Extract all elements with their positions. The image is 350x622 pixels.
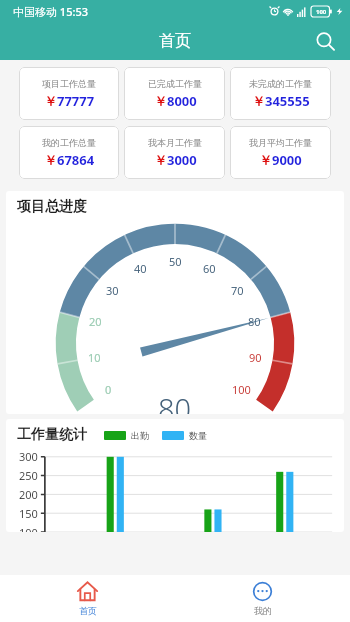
staticText: 未完成的工作量: [249, 78, 312, 89]
staticText: 10: [88, 350, 101, 365]
staticText: 数量: [189, 430, 207, 441]
staticText: ￥77777: [44, 92, 95, 110]
staticText: 80: [248, 314, 261, 329]
staticText: 我本月工作量: [148, 137, 202, 148]
staticText: ￥67864: [44, 151, 95, 169]
staticText: ￥3000: [154, 151, 197, 169]
staticText: 20: [89, 314, 102, 329]
staticText: 我月平均工作量: [249, 137, 312, 148]
staticText: 100: [232, 382, 251, 397]
staticText: 项目工作总量: [42, 78, 96, 89]
staticText: 150: [19, 506, 38, 521]
staticText: 已完成工作量: [148, 78, 202, 89]
staticText: 30: [106, 283, 119, 298]
staticText: ￥345555: [252, 92, 310, 110]
button[interactable]: 我的: [175, 575, 350, 622]
staticText: 我的工作总量: [42, 137, 96, 148]
staticText: 中国移动 15:53: [13, 4, 89, 19]
staticText: ￥9000: [259, 151, 302, 169]
staticText: 出勤: [131, 430, 149, 441]
staticText: 我的: [254, 605, 272, 616]
button[interactable]: 首页: [0, 575, 175, 622]
staticText: 80: [158, 389, 192, 414]
staticText: 首页: [159, 31, 191, 51]
staticText: 70: [231, 283, 244, 298]
staticText: 工作量统计: [17, 426, 87, 444]
button[interactable]: 我的工作总量: [19, 126, 119, 179]
staticText: 100: [19, 525, 38, 532]
button[interactable]: 已完成工作量: [124, 67, 225, 120]
staticText: 250: [19, 468, 38, 483]
staticText: 90: [249, 350, 262, 365]
staticText: 200: [19, 487, 38, 502]
staticText: 40: [134, 261, 147, 276]
staticText: 首页: [79, 605, 97, 616]
staticText: 60: [203, 261, 216, 276]
staticText: 300: [19, 449, 38, 464]
button[interactable]: 我月平均工作量: [230, 126, 331, 179]
staticText: 100: [316, 8, 327, 16]
button[interactable]: 未完成的工作量: [230, 67, 331, 120]
staticText: 0: [105, 382, 112, 397]
button[interactable]: 我本月工作量: [124, 126, 225, 179]
button[interactable]: Search: [308, 24, 342, 58]
staticText: ￥8000: [154, 92, 197, 110]
staticText: 50: [169, 254, 182, 269]
staticText: 项目总进度: [17, 198, 87, 216]
button[interactable]: 项目工作总量: [19, 67, 119, 120]
